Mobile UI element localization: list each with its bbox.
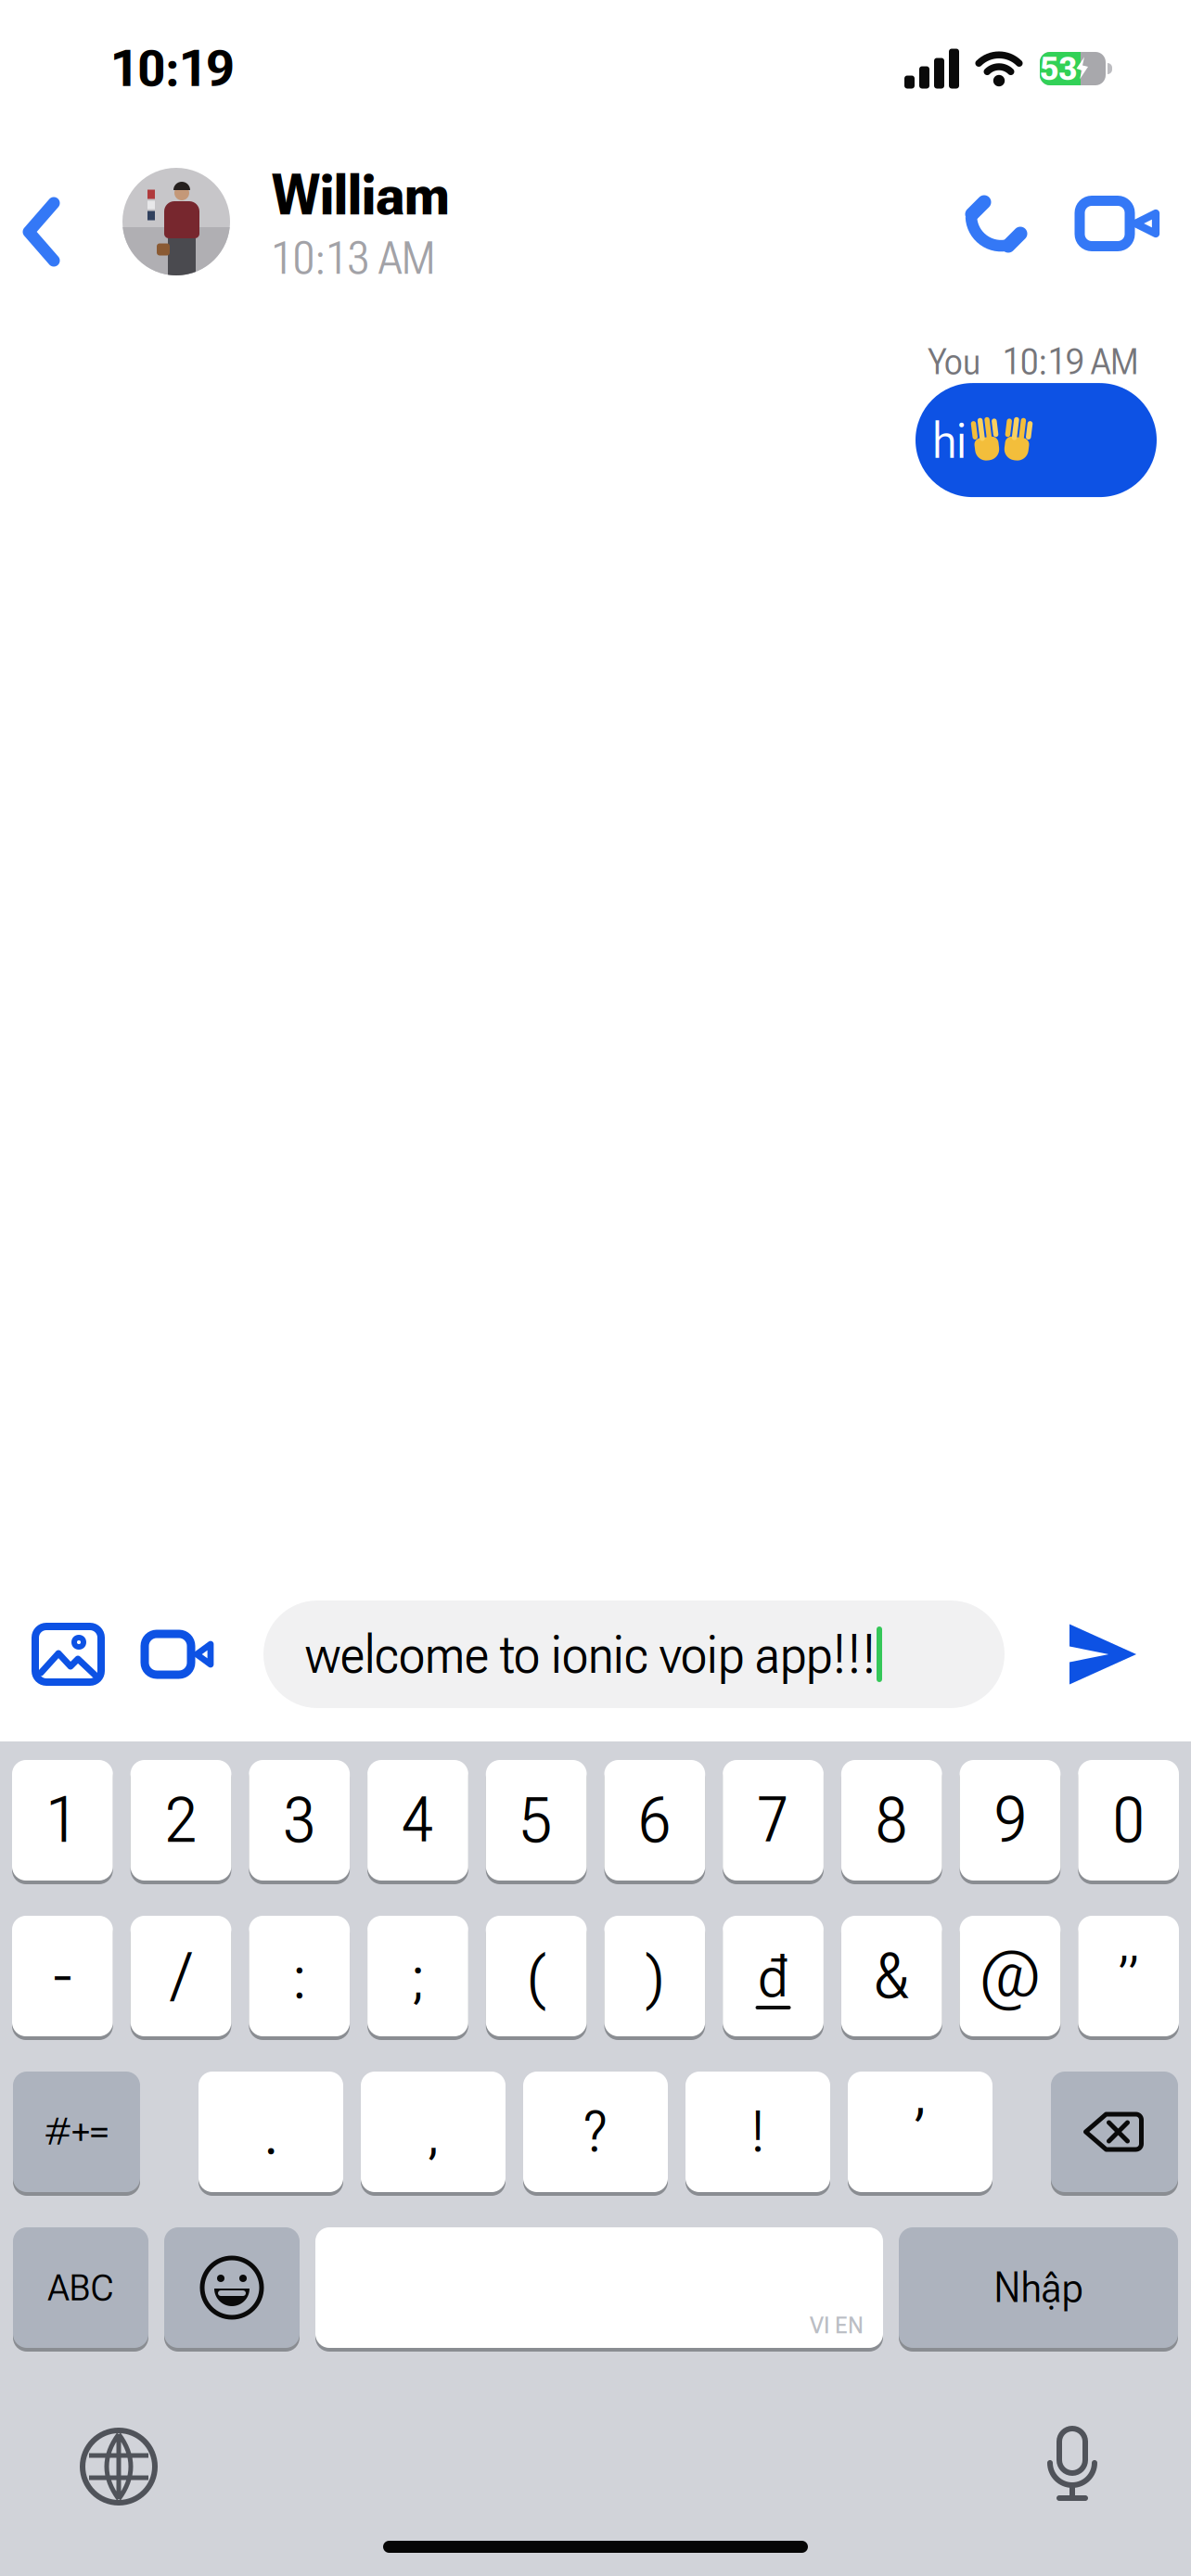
button[interactable]: 1 — [12, 1760, 113, 1881]
staticText: Nhập — [994, 2263, 1083, 2312]
button[interactable]: 3 — [249, 1760, 350, 1881]
button[interactable]: VI EN — [315, 2227, 883, 2348]
staticText: ) — [645, 1939, 664, 2013]
button[interactable]: : — [249, 1916, 350, 2036]
staticText: 53 — [1040, 49, 1077, 88]
staticText: 2 — [166, 1783, 196, 1857]
staticText: welcome to ionic voip app!!! — [305, 1622, 877, 1686]
staticText: ’ — [913, 2095, 927, 2169]
staticText: 3 — [284, 1783, 315, 1857]
button[interactable]: 2 — [131, 1760, 231, 1881]
button[interactable] — [1030, 205, 1158, 253]
button[interactable]: ’ — [848, 2072, 992, 2192]
button[interactable]: 7 — [723, 1760, 824, 1881]
button[interactable]: ? — [523, 2072, 668, 2192]
button[interactable]: - — [12, 1916, 113, 2036]
button[interactable]: @ — [960, 1916, 1060, 2036]
button[interactable]: ) — [604, 1916, 705, 2036]
staticText: You — [928, 340, 980, 383]
staticText: 6 — [639, 1783, 670, 1857]
staticText: ABC — [48, 2266, 114, 2309]
staticText: 10:19 — [111, 39, 234, 98]
button[interactable]: , — [361, 2072, 506, 2192]
button[interactable] — [101, 1634, 212, 1675]
button[interactable]: ! — [685, 2072, 830, 2192]
button[interactable]: 8 — [841, 1760, 942, 1881]
staticText: 10:19 AM — [1003, 340, 1139, 383]
staticText: 5 — [521, 1783, 552, 1857]
staticText: 8 — [876, 1783, 907, 1857]
staticText: ! — [750, 2099, 766, 2165]
button[interactable]: #+= — [13, 2072, 140, 2192]
button[interactable]: welcome to ionic voip app!!! — [212, 1600, 1005, 1708]
staticText: & — [874, 1939, 909, 2013]
staticText: William — [272, 162, 450, 228]
button[interactable]: 6 — [604, 1760, 705, 1881]
staticText: / — [173, 1939, 189, 2013]
button[interactable] — [1046, 2428, 1191, 2506]
button[interactable]: 9 — [960, 1760, 1060, 1881]
staticText: @ — [979, 1939, 1041, 2013]
staticText: : — [291, 1939, 308, 2013]
staticText: 0 — [1113, 1783, 1144, 1857]
staticText: 4 — [402, 1783, 433, 1857]
button[interactable] — [957, 192, 1030, 266]
button[interactable]: / — [131, 1916, 231, 2036]
staticText: 7 — [758, 1783, 788, 1857]
button[interactable] — [0, 196, 59, 262]
staticText: 9 — [995, 1783, 1025, 1857]
button[interactable]: 4 — [367, 1760, 468, 1881]
button[interactable] — [0, 1626, 101, 1682]
staticText: 1 — [47, 1783, 78, 1857]
staticText: đ — [758, 1941, 788, 2011]
button[interactable]: hi — [916, 383, 1157, 497]
button[interactable]: 5 — [486, 1760, 587, 1881]
button[interactable] — [1051, 2072, 1178, 2192]
staticText: VI EN — [810, 2313, 864, 2339]
button[interactable]: ” — [1078, 1916, 1179, 2036]
button[interactable] — [1005, 1621, 1138, 1687]
staticText: - — [53, 1939, 72, 2013]
staticText: #+= — [45, 2110, 109, 2154]
button[interactable] — [122, 168, 230, 275]
button[interactable]: ABC — [13, 2227, 148, 2348]
staticText: ; — [409, 1939, 426, 2013]
button[interactable]: & — [841, 1916, 942, 2036]
button[interactable]: . — [198, 2072, 343, 2192]
button[interactable]: ( — [486, 1916, 587, 2036]
button[interactable]: 0 — [1078, 1760, 1179, 1881]
button[interactable] — [0, 2429, 156, 2504]
staticText: 10:13 AM — [272, 232, 435, 285]
staticText: ? — [583, 2099, 608, 2165]
staticText: . — [263, 2095, 279, 2169]
button[interactable]: đ — [723, 1916, 824, 2036]
staticText: ( — [526, 1939, 546, 2013]
staticText: , — [425, 2095, 442, 2169]
button[interactable]: Nhập — [899, 2227, 1178, 2348]
button[interactable]: ; — [367, 1916, 468, 2036]
button[interactable] — [164, 2227, 300, 2348]
staticText: hi — [932, 410, 967, 471]
staticText: ” — [1118, 1944, 1139, 2008]
